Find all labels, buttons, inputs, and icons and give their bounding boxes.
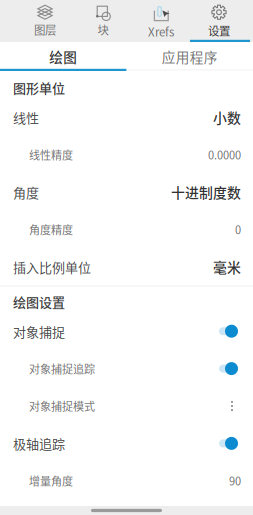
staticText: 对象捕捉追踪 [29, 361, 95, 377]
staticText: 小数 [213, 107, 241, 127]
staticText: 对象捕捉 [13, 322, 65, 341]
staticText: 线性精度 [29, 147, 73, 163]
staticText: 块 [97, 21, 108, 38]
staticText: 0.0000 [208, 147, 241, 163]
staticText: Xrefs [148, 23, 174, 40]
staticText: 应用程序 [162, 47, 218, 66]
button[interactable]: 对象捕捉 [0, 312, 253, 350]
button[interactable]: 图层 [16, 0, 74, 42]
staticText: 增量角度 [29, 473, 73, 489]
button[interactable]: 块 [74, 0, 132, 42]
button[interactable]: 绘图 [0, 42, 126, 71]
staticText: 绘图设置 [13, 292, 65, 311]
staticText: 毫米 [213, 257, 241, 277]
staticText: 十进制度数 [171, 182, 241, 202]
staticText: 角度精度 [29, 221, 73, 237]
staticText: 极轴追踪 [13, 434, 65, 453]
button[interactable]: 设置 [190, 0, 248, 42]
button[interactable]: 对象捕捉追踪 [0, 350, 253, 387]
staticText: 0 [235, 221, 241, 237]
button[interactable]: 应用程序 [126, 42, 253, 71]
staticText: 设置 [208, 22, 230, 39]
staticText: 90 [229, 473, 241, 489]
staticText: 图层 [34, 21, 56, 38]
staticText: 对象捕捉模式 [29, 398, 95, 414]
button[interactable]: Xrefs [132, 0, 190, 42]
button[interactable]: 极轴追踪 [0, 425, 253, 462]
button[interactable]: 角度 [0, 173, 253, 211]
staticText: 线性 [13, 108, 39, 127]
staticText: 图形单位 [13, 78, 65, 97]
staticText: 角度 [13, 182, 39, 201]
button[interactable]: 对象捕捉模式 [0, 387, 253, 425]
button[interactable]: 插入比例单位 [0, 248, 253, 285]
staticText: 绘图 [49, 47, 77, 66]
staticText: 插入比例单位 [13, 257, 91, 276]
button[interactable]: 线性 [0, 98, 253, 136]
button[interactable]: 线性精度 [0, 136, 253, 173]
button[interactable]: 增量角度 [0, 462, 253, 499]
button[interactable]: 角度精度 [0, 211, 253, 248]
